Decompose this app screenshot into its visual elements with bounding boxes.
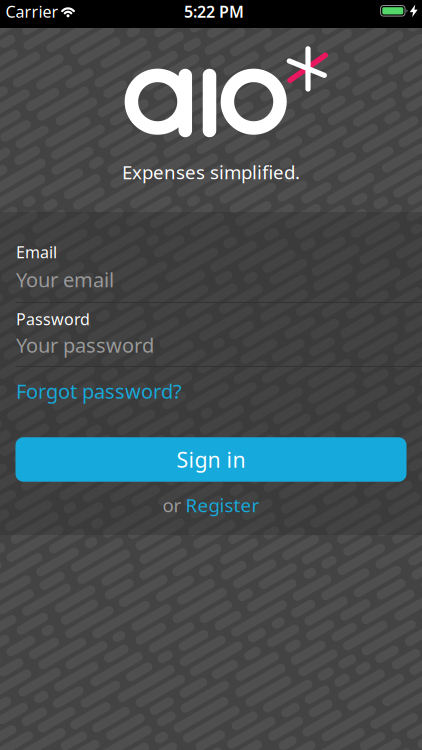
button[interactable]: Forgot password?	[16, 378, 182, 404]
staticText: Carrier	[6, 1, 59, 22]
staticText: Sign in	[176, 445, 245, 474]
button[interactable]: Register	[185, 493, 259, 517]
button[interactable]: Sign in	[15, 437, 406, 482]
staticText: Your email	[16, 266, 114, 293]
button[interactable]: Your password	[16, 332, 406, 358]
staticText: Expenses simplified.	[122, 160, 300, 184]
staticText: Forgot password?	[16, 378, 182, 404]
staticText: or	[162, 493, 181, 517]
staticText: Register	[185, 493, 259, 517]
button[interactable]: Your email	[16, 266, 406, 293]
staticText: 5:22 PM	[184, 1, 244, 22]
staticText: Email	[16, 241, 57, 263]
staticText: Password	[16, 308, 90, 330]
staticText: Your password	[16, 332, 154, 358]
